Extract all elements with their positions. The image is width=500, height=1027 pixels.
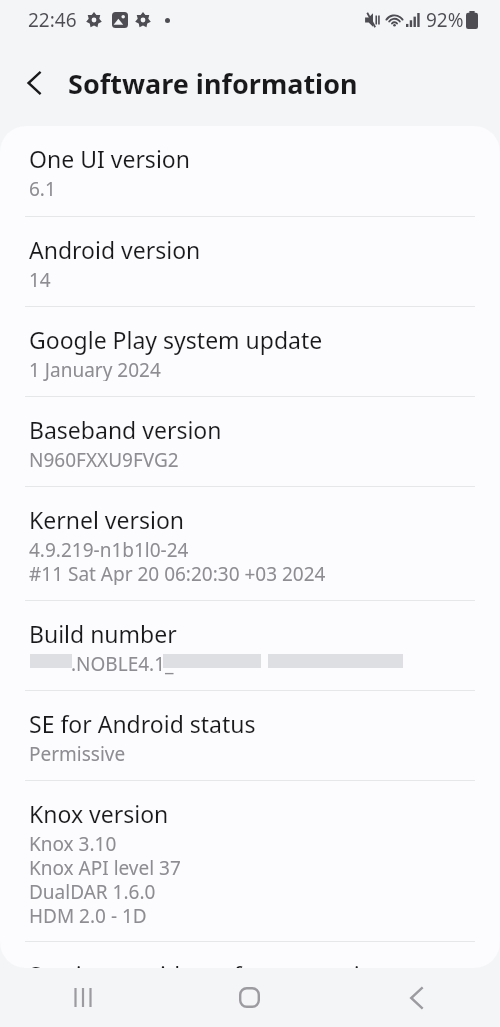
button[interactable]: SE for Android status — [0, 691, 500, 781]
staticText: .NOBLE4.1_ — [71, 651, 174, 677]
staticText: SE for Android status — [29, 708, 256, 739]
button[interactable]: Build number — [0, 601, 500, 691]
staticText: N960FXXU9FVG2 — [29, 447, 179, 471]
staticText: Baseband version — [29, 414, 222, 445]
staticText: 4.9.219-n1b1l0-24 — [29, 537, 189, 561]
staticText: Software information — [68, 65, 358, 102]
button[interactable]: Home — [166, 968, 333, 1027]
staticText: One UI version — [29, 143, 190, 174]
staticText: 22:46 — [28, 7, 77, 33]
staticText: Knox version — [29, 798, 169, 829]
staticText: Android version — [29, 234, 201, 265]
staticText: Service provider software version — [29, 959, 388, 968]
staticText: 92% — [426, 7, 464, 33]
staticText: HDM 2.0 - 1D — [29, 903, 147, 927]
button[interactable]: Kernel version — [0, 487, 500, 601]
staticText: 14 — [29, 267, 51, 291]
staticText: Kernel version — [29, 504, 185, 535]
staticText: Permissive — [29, 741, 126, 765]
button[interactable]: Baseband version — [0, 397, 500, 487]
staticText: DualDAR 1.6.0 — [29, 879, 156, 903]
button[interactable]: One UI version — [0, 126, 500, 217]
button[interactable]: Service provider software version — [0, 942, 500, 968]
staticText: Knox 3.10 — [29, 831, 117, 855]
staticText: Google Play system update — [29, 324, 323, 355]
staticText: Build number — [29, 618, 177, 649]
staticText: #11 Sat Apr 20 06:20:30 +03 2024 — [29, 561, 326, 585]
staticText: 1 January 2024 — [29, 357, 161, 381]
button[interactable]: Back — [333, 968, 500, 1027]
button[interactable]: Back — [17, 66, 51, 100]
staticText: 6.1 — [29, 176, 56, 200]
button[interactable]: Android version — [0, 217, 500, 307]
button[interactable]: Knox version — [0, 781, 500, 942]
button[interactable]: Recent apps — [0, 968, 166, 1027]
staticText: Knox API level 37 — [29, 855, 181, 879]
button[interactable]: Google Play system update — [0, 307, 500, 397]
